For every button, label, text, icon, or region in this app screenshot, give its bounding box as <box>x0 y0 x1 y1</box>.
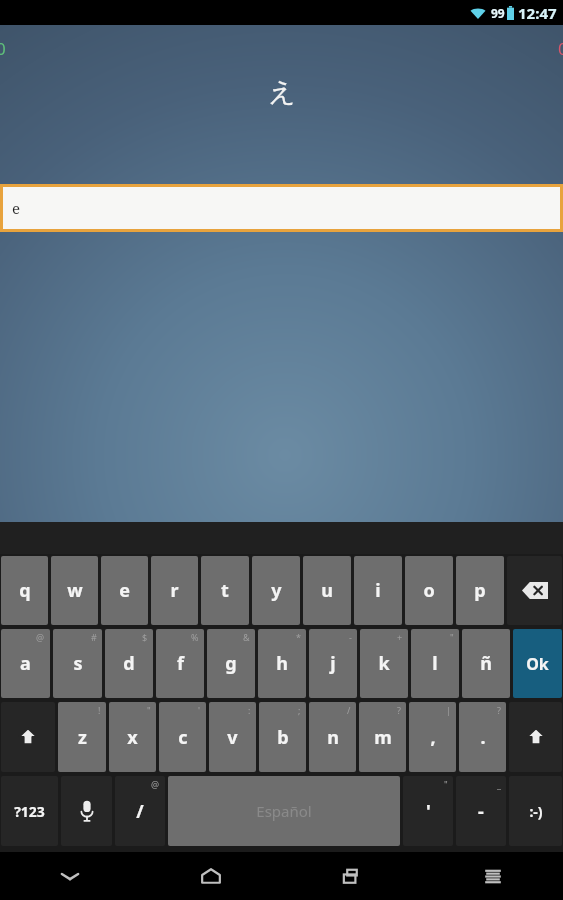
staticText: g <box>225 651 237 676</box>
button[interactable]: % <box>156 629 204 698</box>
staticText: p <box>474 578 486 603</box>
staticText: r <box>170 578 179 603</box>
button[interactable]: Delete <box>507 556 562 625</box>
staticText: ' <box>426 799 431 824</box>
button[interactable]: Menu <box>422 852 563 900</box>
staticText: ?123 <box>14 802 45 821</box>
button[interactable]: " <box>109 702 156 772</box>
button[interactable]: ?123 <box>1 776 58 846</box>
staticText: 12:47 <box>518 3 557 23</box>
staticText: " <box>450 631 454 643</box>
button[interactable]: * <box>258 629 306 698</box>
button[interactable]: + <box>360 629 408 698</box>
staticText: h <box>276 651 288 676</box>
button[interactable]: q <box>1 556 48 625</box>
staticText: c <box>178 725 188 750</box>
button[interactable]: " <box>403 776 453 846</box>
staticText: - <box>478 799 484 824</box>
button[interactable]: # <box>53 629 102 698</box>
staticText: / <box>136 799 144 824</box>
staticText: * <box>296 631 301 643</box>
button[interactable]: ; <box>259 702 306 772</box>
button[interactable]: " <box>411 629 459 698</box>
staticText: " <box>444 778 448 790</box>
staticText: n <box>327 725 339 750</box>
staticText: @ <box>151 778 160 790</box>
button[interactable]: & <box>207 629 255 698</box>
button[interactable]: r <box>151 556 198 625</box>
staticText: u <box>321 578 333 603</box>
staticText: 0 <box>0 37 6 60</box>
staticText: ? <box>497 704 501 716</box>
staticText: e <box>12 198 21 218</box>
button[interactable]: Shift <box>1 702 55 772</box>
button[interactable]: - <box>309 629 357 698</box>
staticText: q <box>19 578 31 603</box>
button[interactable]: _ <box>456 776 506 846</box>
staticText: 0 <box>558 37 563 60</box>
staticText: s <box>73 651 83 676</box>
button[interactable]: y <box>252 556 300 625</box>
button[interactable]: Recent apps <box>281 852 422 900</box>
button[interactable]: u <box>303 556 351 625</box>
button[interactable]: e <box>3 187 560 229</box>
button[interactable]: Hide keyboard <box>0 852 140 900</box>
button[interactable]: e <box>101 556 148 625</box>
staticText: " <box>147 704 151 716</box>
button[interactable]: @ <box>1 629 50 698</box>
staticText: f <box>177 651 184 676</box>
staticText: : <box>248 704 251 716</box>
staticText: え <box>268 75 296 109</box>
staticText: b <box>277 725 289 750</box>
button[interactable]: ? <box>459 702 506 772</box>
staticText: d <box>123 651 135 676</box>
button[interactable]: i <box>354 556 402 625</box>
staticText: ñ <box>480 651 492 676</box>
button[interactable]: ñ <box>462 629 510 698</box>
staticText: Ok <box>526 653 549 675</box>
button[interactable]: Voice input <box>61 776 112 846</box>
button[interactable]: / <box>309 702 356 772</box>
button[interactable]: Emoticon <box>509 776 562 846</box>
staticText: ; <box>298 704 301 716</box>
staticText: k <box>378 651 390 676</box>
button[interactable]: ! <box>58 702 106 772</box>
button[interactable]: w <box>51 556 98 625</box>
staticText: @ <box>36 631 45 643</box>
staticText: m <box>374 725 392 750</box>
staticText: + <box>397 631 403 643</box>
staticText: , <box>430 725 436 750</box>
staticText: - <box>349 631 352 643</box>
staticText: Español <box>256 801 312 821</box>
button[interactable]: ' <box>159 702 206 772</box>
button[interactable]: | <box>409 702 456 772</box>
button[interactable]: ? <box>359 702 406 772</box>
staticText: ' <box>198 704 201 716</box>
staticText: y <box>271 578 282 603</box>
button[interactable]: @ <box>115 776 165 846</box>
button[interactable]: t <box>201 556 249 625</box>
staticText: i <box>375 578 381 603</box>
button[interactable]: Home <box>140 852 281 900</box>
staticText: j <box>330 651 336 676</box>
button[interactable]: p <box>456 556 504 625</box>
button[interactable]: Shift <box>509 702 562 772</box>
staticText: e <box>119 578 130 603</box>
staticText: v <box>227 725 238 750</box>
staticText: a <box>20 651 31 676</box>
button[interactable]: : <box>209 702 256 772</box>
button[interactable]: Ok <box>513 629 562 698</box>
staticText: w <box>67 578 83 603</box>
staticText: x <box>127 725 138 750</box>
staticText: $ <box>142 631 148 643</box>
staticText: # <box>91 631 97 643</box>
staticText: ? <box>397 704 401 716</box>
staticText: 99 <box>491 5 505 21</box>
staticText: o <box>423 578 435 603</box>
staticText: :-) <box>529 802 543 821</box>
staticText: | <box>446 704 451 716</box>
staticText: . <box>480 725 486 750</box>
button[interactable]: $ <box>105 629 153 698</box>
button[interactable]: o <box>405 556 453 625</box>
